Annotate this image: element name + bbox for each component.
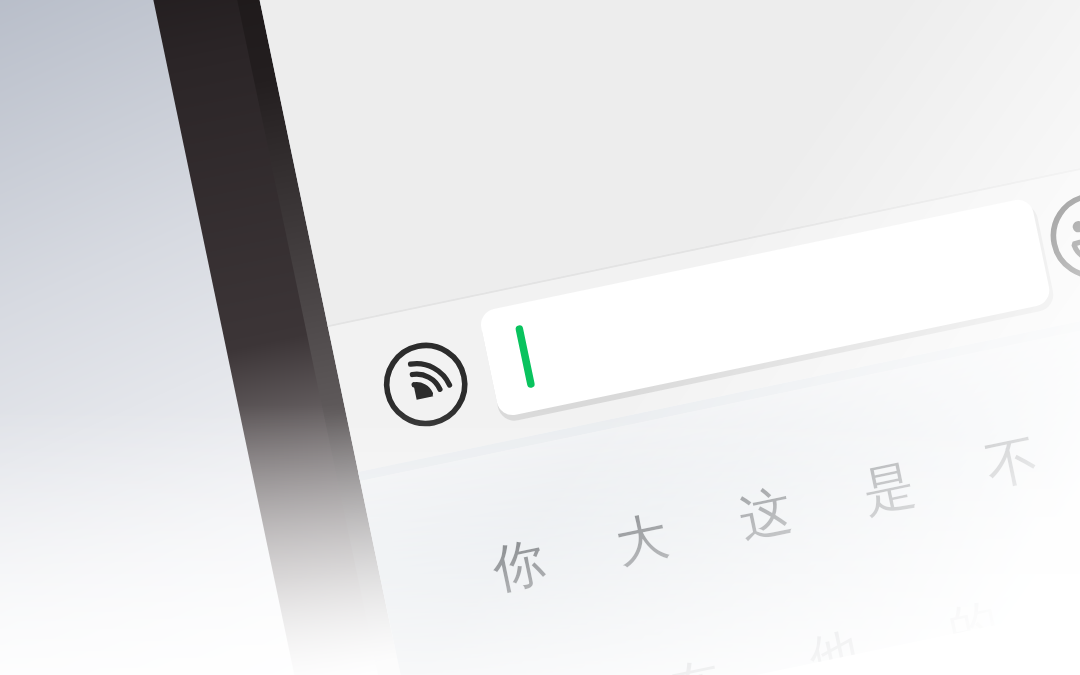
button[interactable]: WeChat chat screen: [0, 0, 1080, 675]
